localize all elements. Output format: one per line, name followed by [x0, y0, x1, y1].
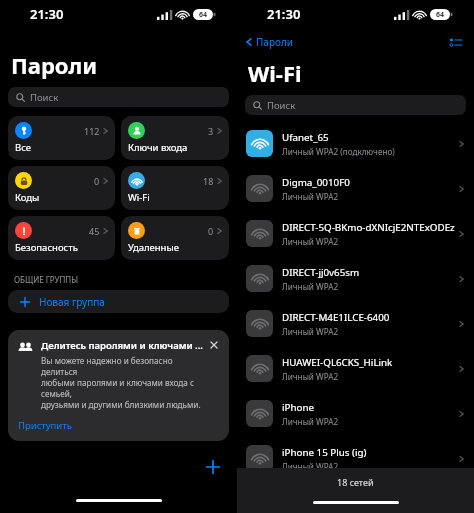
staticText: Личный WPA2 [282, 326, 339, 337]
staticText: 18 сетей [337, 476, 374, 488]
staticText: 112 [84, 125, 100, 137]
staticText: Личный WPA2 [282, 499, 339, 510]
button[interactable]: 45 [8, 216, 115, 260]
staticText: Личный WPA2 [282, 461, 339, 472]
staticText: Digma_0010F0 [282, 176, 350, 189]
button[interactable]: Пароли [246, 35, 293, 49]
button[interactable]: Закрыть [208, 339, 220, 351]
button[interactable]: 0 [8, 166, 115, 210]
staticText: Личный WPA2 [282, 191, 339, 202]
staticText: Личный WPA2 [282, 371, 339, 382]
staticText: iPhone 15 Plus (ig) [282, 446, 367, 459]
staticText: 21:30 [30, 5, 64, 23]
staticText: ОБЩИЕ ГРУППЫ [14, 274, 78, 285]
staticText: Личный WPA2 [282, 281, 339, 292]
staticText: Ключи входа [128, 141, 188, 154]
button[interactable]: iPhone 15 Plus (ig) [237, 436, 474, 481]
staticText: Личный WPA2 [282, 236, 339, 247]
staticText: Поиск [267, 99, 296, 112]
button[interactable]: 3 [121, 116, 229, 160]
staticText: Новая группа [39, 295, 105, 309]
button[interactable]: 0 [121, 216, 229, 260]
staticText: Поиск [30, 91, 59, 104]
staticText: 64 [436, 10, 445, 20]
button[interactable]: Приступить [18, 419, 72, 432]
staticText: DIRECT-M4E1ILCE-6400 [282, 311, 390, 324]
staticText: Личный WPA2 [282, 416, 339, 427]
staticText: Приступить [18, 419, 72, 432]
staticText: Удаленные [128, 241, 179, 254]
button[interactable]: Делитесь паролями и ключами входа [8, 330, 229, 441]
staticText: Keenetic-6774 [282, 484, 348, 497]
staticText: Делитесь паролями и ключами входа [41, 339, 204, 352]
staticText: Все [15, 141, 31, 154]
staticText: DIRECT-5Q-BKmo-dXNIcjE2NTExODEz [282, 221, 455, 234]
button[interactable]: Digma_0010F0 [237, 166, 474, 211]
staticText: Wi-Fi [248, 58, 302, 88]
staticText: HUAWEI-QL6CKS_HiLink [282, 356, 393, 369]
staticText: Wi-Fi [128, 191, 150, 204]
staticText: 3 [208, 125, 214, 137]
staticText: 0 [208, 225, 214, 237]
button[interactable]: DIRECT-5Q-BKmo-dXNIcjE2NTExODEz [237, 211, 474, 256]
staticText: 45 [89, 225, 100, 237]
button[interactable]: 112 [8, 116, 115, 160]
button[interactable]: 18 [121, 166, 229, 210]
button[interactable]: iPhone [237, 391, 474, 436]
staticText: Личный WPA2 (подключено) [282, 146, 395, 157]
staticText: 21:30 [267, 5, 301, 23]
button[interactable]: Сортировка [447, 33, 465, 51]
staticText: 0 [94, 175, 100, 187]
staticText: 64 [199, 10, 208, 20]
staticText: 18 [203, 175, 214, 187]
button[interactable]: Добавить пароль [201, 455, 225, 479]
staticText: Вы можете надежно и безопасно делиться л… [41, 355, 204, 410]
staticText: Безопасность [15, 241, 78, 254]
button[interactable]: Новая группа [8, 290, 229, 313]
button[interactable]: HUAWEI-QL6CKS_HiLink [237, 346, 474, 391]
button[interactable]: Ufanet_65 [237, 121, 474, 166]
staticText: Пароли [11, 50, 98, 80]
staticText: iPhone [282, 401, 315, 414]
button[interactable]: Поиск [245, 95, 466, 115]
staticText: Пароли [256, 35, 293, 49]
staticText: Коды [15, 191, 40, 204]
button[interactable]: Поиск [8, 87, 229, 107]
button[interactable]: DIRECT-M4E1ILCE-6400 [237, 301, 474, 346]
staticText: Ufanet_65 [282, 131, 329, 144]
staticText: DIRECT-jj0v65sm [282, 266, 360, 279]
button[interactable]: DIRECT-jj0v65sm [237, 256, 474, 301]
button[interactable]: Keenetic-6774 [237, 481, 474, 513]
